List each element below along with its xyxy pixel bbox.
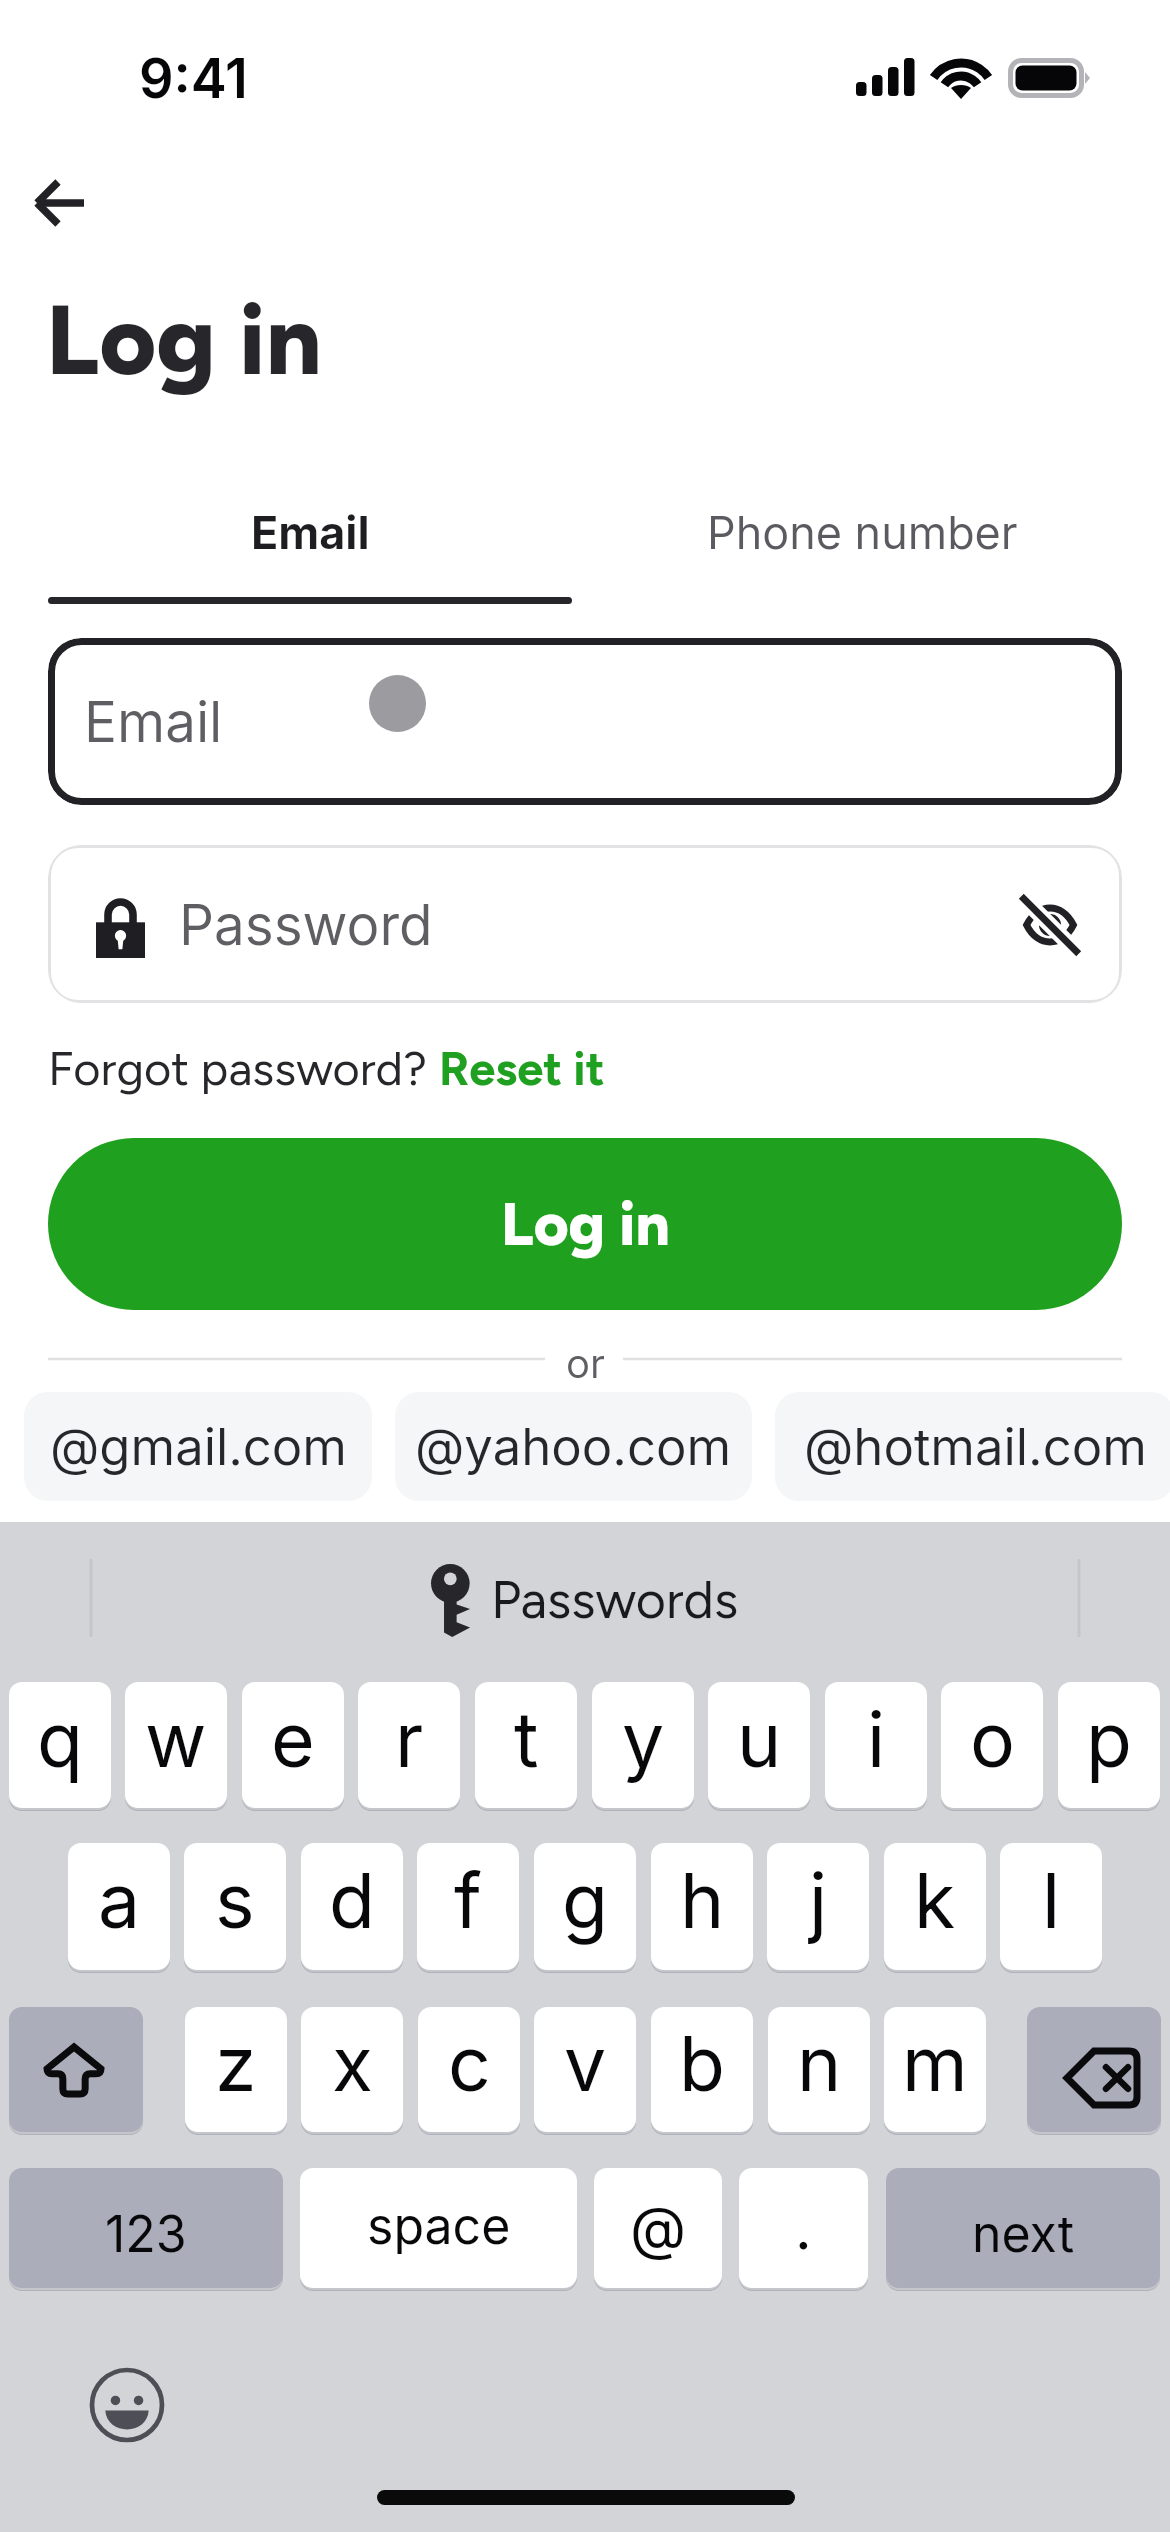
staticText: o [970, 1694, 1015, 1785]
staticText: @ [630, 2193, 687, 2263]
button[interactable]: Show password [1017, 892, 1083, 958]
staticText: c [448, 2018, 491, 2109]
button[interactable]: z [185, 2007, 287, 2132]
button[interactable]: j [767, 1843, 869, 1970]
button[interactable]: @yahoo.com [395, 1392, 752, 1501]
button[interactable]: n [768, 2007, 870, 2132]
button[interactable]: Back [17, 163, 101, 243]
staticText: v [564, 2018, 607, 2109]
staticText: Email [251, 505, 370, 559]
button[interactable]: . [739, 2168, 868, 2288]
button[interactable]: u [708, 1682, 810, 1808]
button[interactable]: t [475, 1682, 577, 1808]
staticText: x [332, 2018, 373, 2109]
button[interactable]: Password [48, 845, 1122, 1003]
button[interactable]: Passwords [0, 1562, 1170, 1638]
staticText: s [215, 1855, 255, 1946]
button[interactable]: w [125, 1682, 227, 1808]
button[interactable]: Reset it [439, 1040, 605, 1096]
button[interactable]: m [884, 2007, 986, 2132]
staticText: q [37, 1694, 83, 1785]
button[interactable]: d [301, 1843, 403, 1970]
button[interactable]: next [886, 2168, 1160, 2288]
staticText: next [972, 2204, 1075, 2264]
button[interactable]: Emoji [88, 2366, 166, 2444]
staticText: l [1042, 1855, 1061, 1946]
staticText: z [215, 2018, 257, 2109]
staticText: Email [84, 689, 223, 756]
button[interactable]: Phone number [600, 492, 1124, 572]
button[interactable]: x [301, 2007, 403, 2132]
staticText: 9:41 [139, 46, 248, 111]
staticText: r [395, 1694, 424, 1785]
staticText: k [914, 1855, 956, 1946]
staticText: y [622, 1694, 665, 1785]
staticText: e [271, 1694, 315, 1785]
staticText: Phone number [707, 505, 1018, 559]
staticText: Log in [46, 281, 322, 399]
staticText: @gmail.com [50, 1416, 347, 1478]
button[interactable]: space [300, 2168, 577, 2288]
staticText: p [1086, 1694, 1132, 1785]
button[interactable]: b [651, 2007, 753, 2132]
staticText: i [867, 1694, 886, 1785]
staticText: space [367, 2196, 511, 2256]
staticText: t [514, 1694, 539, 1785]
button[interactable]: @hotmail.com [775, 1392, 1170, 1501]
staticText: Log in [501, 1188, 670, 1260]
button[interactable]: a [68, 1843, 170, 1970]
button[interactable]: p [1058, 1682, 1160, 1808]
button[interactable]: g [534, 1843, 636, 1970]
staticText: b [679, 2018, 725, 2109]
button[interactable]: c [418, 2007, 520, 2132]
staticText: m [902, 2018, 968, 2109]
button[interactable] [1027, 2007, 1161, 2132]
staticText: 123 [105, 2204, 187, 2264]
staticText: . [795, 2193, 812, 2263]
staticText: d [329, 1855, 375, 1946]
button[interactable] [9, 2007, 143, 2132]
button[interactable]: @ [594, 2168, 722, 2288]
staticText: or [566, 1339, 605, 1379]
button[interactable]: h [651, 1843, 753, 1970]
staticText: Reset it [439, 1040, 605, 1096]
staticText: a [98, 1855, 141, 1946]
button[interactable]: Log in [48, 1138, 1122, 1310]
staticText: Password [179, 892, 433, 959]
staticText: Passwords [491, 1569, 739, 1631]
button[interactable]: q [9, 1682, 111, 1808]
button[interactable]: Email [48, 638, 1122, 805]
button[interactable]: Email [48, 492, 572, 572]
button[interactable]: f [417, 1843, 519, 1970]
staticText: @hotmail.com [804, 1416, 1147, 1478]
button[interactable]: k [884, 1843, 986, 1970]
staticText: @yahoo.com [415, 1416, 732, 1478]
staticText: f [454, 1855, 482, 1946]
button[interactable]: y [592, 1682, 694, 1808]
staticText: w [145, 1694, 207, 1785]
button[interactable]: s [184, 1843, 286, 1970]
button[interactable]: 123 [9, 2168, 283, 2288]
button[interactable]: e [242, 1682, 344, 1808]
staticText: h [680, 1855, 725, 1946]
staticText: g [562, 1855, 608, 1946]
staticText: u [737, 1694, 782, 1785]
staticText: j [809, 1855, 828, 1946]
button[interactable]: i [825, 1682, 927, 1808]
staticText: n [797, 2018, 842, 2109]
staticText: Forgot password? [48, 1040, 439, 1096]
button[interactable]: v [534, 2007, 636, 2132]
button[interactable]: o [941, 1682, 1043, 1808]
button[interactable]: r [358, 1682, 460, 1808]
button[interactable]: @gmail.com [24, 1392, 372, 1501]
button[interactable]: l [1000, 1843, 1102, 1970]
